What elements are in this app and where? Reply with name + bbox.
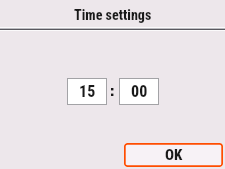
staticText: Time settings xyxy=(74,7,152,23)
button[interactable]: Time value 00 xyxy=(119,78,159,105)
button[interactable]: Time settings xyxy=(0,0,225,27)
staticText: OK xyxy=(165,146,183,164)
staticText: 00 xyxy=(131,82,148,101)
button[interactable]: Time value 15 xyxy=(67,78,107,105)
button[interactable]: OK xyxy=(124,143,223,167)
staticText: 15 xyxy=(79,82,96,101)
